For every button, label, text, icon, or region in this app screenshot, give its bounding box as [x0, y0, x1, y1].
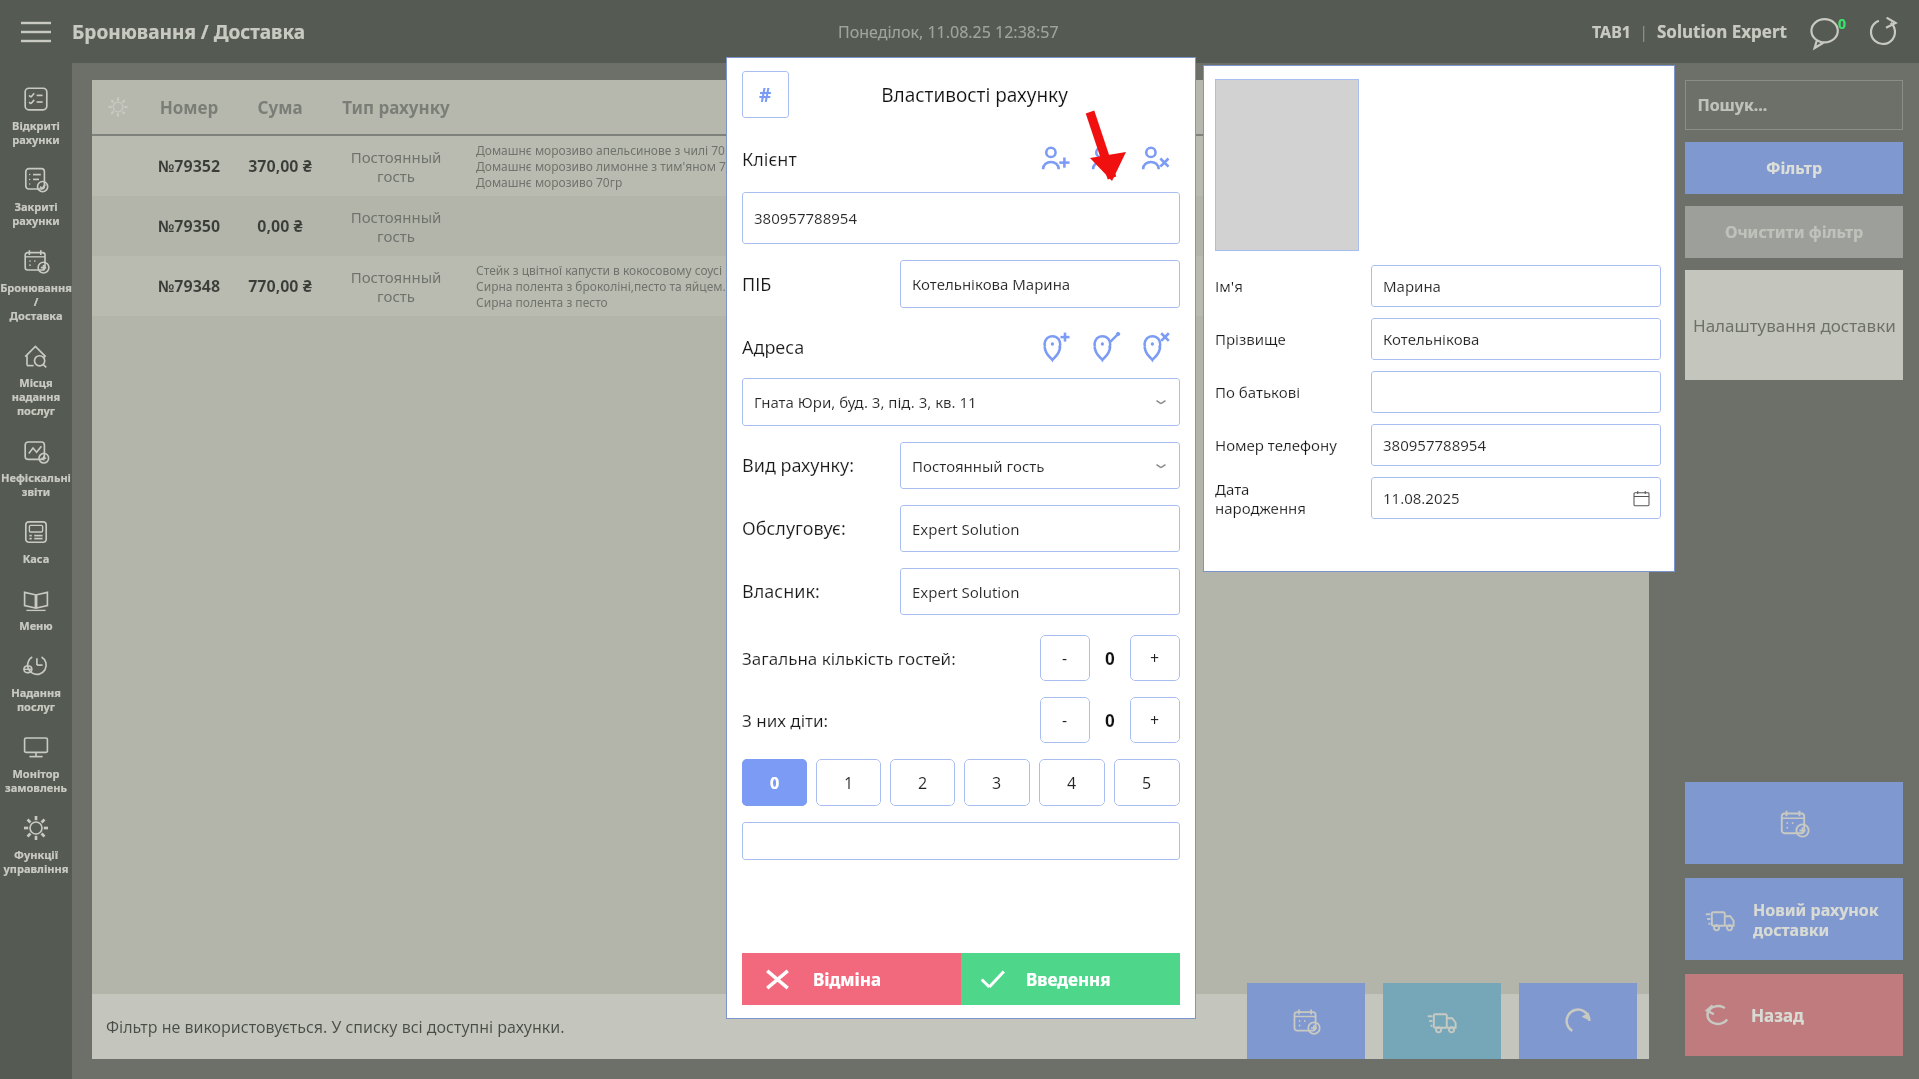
button[interactable]: Місця надання послуг [0, 341, 72, 418]
staticText: + [1150, 647, 1160, 669]
button[interactable]: Menu [0, 0, 72, 63]
staticText: 0 [770, 772, 780, 794]
button[interactable]: Add address [1036, 327, 1076, 367]
button[interactable]: Постоянный гость [900, 442, 1180, 489]
button[interactable]: Відкриті рахунки [0, 84, 72, 147]
button[interactable]: 1 [816, 759, 881, 806]
button[interactable]: Share [1863, 12, 1903, 52]
button[interactable]: Remove client [1136, 139, 1176, 179]
staticText: Котельнікова [1383, 329, 1649, 349]
staticText: Відкриті рахунки [0, 118, 72, 147]
button[interactable]: - [1040, 697, 1090, 743]
button[interactable]: Edit address [1086, 327, 1126, 367]
button[interactable]: Новий рахунок доставки [1685, 878, 1903, 960]
button[interactable]: 2 [890, 759, 955, 806]
staticText: 380957788954 [1383, 435, 1649, 455]
staticText: Домашнє морозиво апельсинове з чилі 70… [476, 142, 1613, 158]
staticText: TAB1 [1592, 21, 1631, 43]
staticText: Прізвище [1215, 329, 1371, 349]
staticText: Тип рахунку [326, 96, 466, 119]
staticText: Дата народження [1215, 479, 1371, 518]
button[interactable]: Каса [0, 517, 72, 566]
staticText: 4 [1067, 772, 1077, 794]
button[interactable]: Expert Solution [900, 568, 1180, 615]
button[interactable]: Фільтр [1685, 142, 1903, 194]
button[interactable]: Закриті рахунки [0, 165, 72, 228]
button[interactable]: + [1130, 697, 1180, 743]
staticText: ПІБ [742, 272, 900, 297]
button[interactable]: Пошук... [1685, 80, 1903, 130]
button[interactable]: Введення [961, 953, 1180, 1005]
button[interactable]: Котельнікова Марина [900, 260, 1180, 308]
staticText: Вміст [466, 96, 1649, 119]
staticText: 0 [1838, 14, 1847, 33]
staticText: Постоянный гость [326, 267, 466, 306]
staticText: 1,00 [1613, 262, 1637, 278]
button[interactable]: 0 [742, 759, 807, 806]
staticText: Клієнт [742, 147, 1036, 172]
staticText: 770,00 ₴ [234, 275, 326, 297]
button[interactable]: 380957788954 [1371, 424, 1661, 466]
button[interactable]: Відміна [742, 953, 961, 1005]
staticText: Постоянный гость [326, 207, 466, 246]
staticText: Властивості рахунку [789, 82, 1160, 108]
button[interactable]: Назад [1685, 974, 1903, 1056]
button[interactable]: Котельнікова [1371, 318, 1661, 360]
staticText: Налаштування доставки [1693, 314, 1896, 337]
button[interactable]: Надання послуг [0, 651, 72, 714]
button[interactable]: 380957788954 [742, 192, 1180, 244]
staticText: Марина [1383, 276, 1649, 296]
staticText: Домашнє морозиво лимонне з тим'яном 7… [476, 158, 1613, 174]
button[interactable]: Функції управління [0, 813, 72, 876]
staticText: + [1150, 709, 1160, 731]
staticText: 0,00 ₴ [234, 215, 326, 237]
staticText: Обслуговує: [742, 516, 900, 541]
staticText: 2 [918, 772, 928, 794]
staticText: Сума [234, 96, 326, 119]
staticText: Надання послуг [0, 685, 72, 714]
button[interactable]: Монітор замовлень [0, 732, 72, 795]
button[interactable] [1371, 371, 1661, 413]
button[interactable]: Марина [1371, 265, 1661, 307]
button[interactable]: + [1130, 635, 1180, 681]
button[interactable]: Меню [0, 584, 72, 633]
staticText: 3 [992, 772, 1002, 794]
button[interactable]: Remove address [1136, 327, 1176, 367]
staticText: Ім'я [1215, 276, 1371, 296]
button[interactable]: New delivery [1383, 983, 1501, 1059]
staticText: Expert Solution [912, 582, 1168, 602]
button[interactable]: 11.08.2025 [1371, 477, 1661, 519]
button[interactable]: Expert Solution [900, 505, 1180, 552]
staticText: Постоянный гость [326, 147, 466, 186]
staticText: 0 [1105, 647, 1115, 670]
button[interactable]: 4 [1039, 759, 1105, 806]
staticText: Введення [1026, 968, 1111, 991]
staticText: Стейк з цвітної капусти в кокосовому соу… [476, 262, 1613, 278]
button[interactable] [742, 822, 1180, 860]
button[interactable]: Налаштування доставки [1685, 270, 1903, 380]
button[interactable]: Number [742, 71, 789, 118]
staticText: Меню [0, 618, 72, 633]
button[interactable]: Add client [1036, 139, 1076, 179]
button[interactable]: Очистити фільтр [1685, 206, 1903, 258]
button[interactable]: Add booking [1247, 983, 1365, 1059]
staticText: 5 [1142, 772, 1152, 794]
staticText: Номер [144, 96, 234, 119]
button[interactable]: Refresh [1519, 983, 1637, 1059]
staticText: 370,00 ₴ [234, 155, 326, 177]
staticText: Домашнє морозиво 70гр [476, 174, 1613, 190]
button[interactable]: Messages [1809, 12, 1849, 52]
button[interactable]: 3 [964, 759, 1030, 806]
staticText: Загальна кількість гостей: [742, 647, 1040, 670]
staticText: Solution Expert [1657, 20, 1787, 43]
button[interactable]: Нефіскальні звіти [0, 436, 72, 499]
staticText: Понеділок, 11.08.25 12:38:57 [838, 21, 1059, 43]
button[interactable]: - [1040, 635, 1090, 681]
staticText: Сирна полента з броколіні,песто та яйцем… [476, 278, 1613, 294]
button[interactable]: New booking [1685, 782, 1903, 864]
staticText: Фільтр не використовується. У списку всі… [106, 1016, 565, 1038]
button[interactable]: 5 [1114, 759, 1180, 806]
button[interactable]: Edit client [1086, 139, 1126, 179]
button[interactable]: Гната Юри, буд. 3, під. 3, кв. 11 [742, 378, 1180, 426]
button[interactable]: Бронювання / Доставка [0, 246, 72, 323]
